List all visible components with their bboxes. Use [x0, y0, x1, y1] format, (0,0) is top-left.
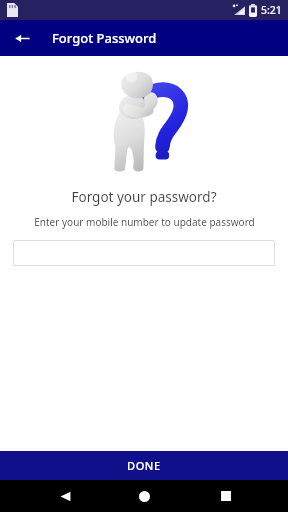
button[interactable]: Home	[131, 483, 157, 509]
staticText: Enter your mobile number to update passw…	[34, 215, 255, 229]
staticText: Forgot your password?	[71, 188, 217, 206]
button[interactable]: Back	[8, 24, 36, 52]
button[interactable]: Recent apps	[213, 483, 239, 509]
button[interactable]: DONE	[0, 451, 288, 480]
staticText: 5:21	[261, 3, 282, 17]
button[interactable]: Back	[52, 483, 78, 509]
staticText: Forgot Password	[52, 29, 157, 47]
button[interactable]	[13, 240, 275, 266]
staticText: DONE	[127, 458, 161, 473]
